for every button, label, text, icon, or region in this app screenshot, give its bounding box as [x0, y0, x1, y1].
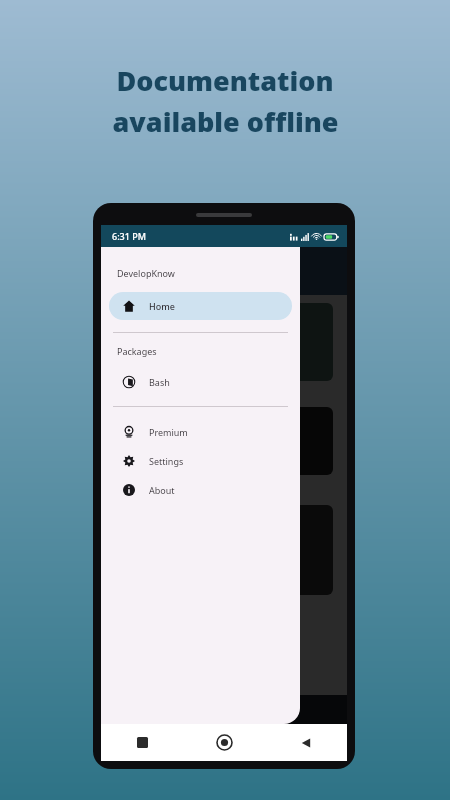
staticText: Bash	[149, 376, 170, 388]
staticText: Documentation	[116, 62, 334, 99]
staticText: available offline	[112, 103, 339, 140]
button[interactable]: Back	[265, 724, 347, 761]
staticText: About	[149, 484, 175, 496]
button[interactable]: Recent apps	[101, 724, 183, 761]
button[interactable]: Settings	[101, 446, 300, 475]
staticText: Settings	[149, 455, 184, 467]
staticText: 6:31 PM	[112, 230, 146, 242]
button[interactable]: Bash	[101, 367, 300, 396]
button[interactable]: About	[101, 475, 300, 504]
button[interactable]: Home	[183, 724, 265, 761]
staticText: Premium	[149, 426, 188, 438]
button[interactable]: Home	[109, 292, 292, 320]
button[interactable]: Premium	[101, 417, 300, 446]
staticText: Home	[149, 300, 175, 312]
staticText: DevelopKnow	[117, 267, 175, 279]
staticText: Packages	[117, 345, 157, 357]
